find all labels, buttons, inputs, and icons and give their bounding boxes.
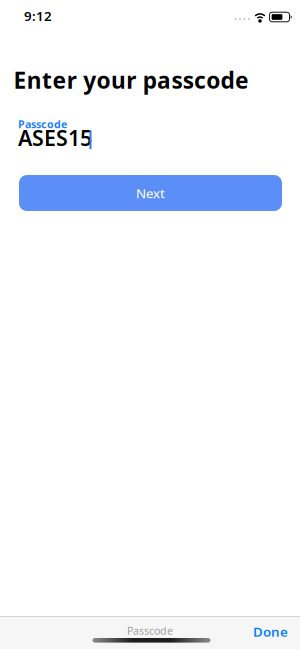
button[interactable]: Passcode xyxy=(18,117,128,155)
staticText: Enter your passcode xyxy=(13,65,249,95)
staticText: Next xyxy=(136,184,165,202)
staticText: 9:12 xyxy=(24,7,52,25)
staticText: Passcode xyxy=(127,624,173,638)
staticText: ASES15 xyxy=(18,124,92,152)
staticText: Done xyxy=(253,623,288,640)
button[interactable]: Done xyxy=(253,617,300,640)
button[interactable]: Next xyxy=(19,175,282,211)
button[interactable]: Passcode xyxy=(90,623,210,639)
staticText: Passcode xyxy=(18,117,67,131)
